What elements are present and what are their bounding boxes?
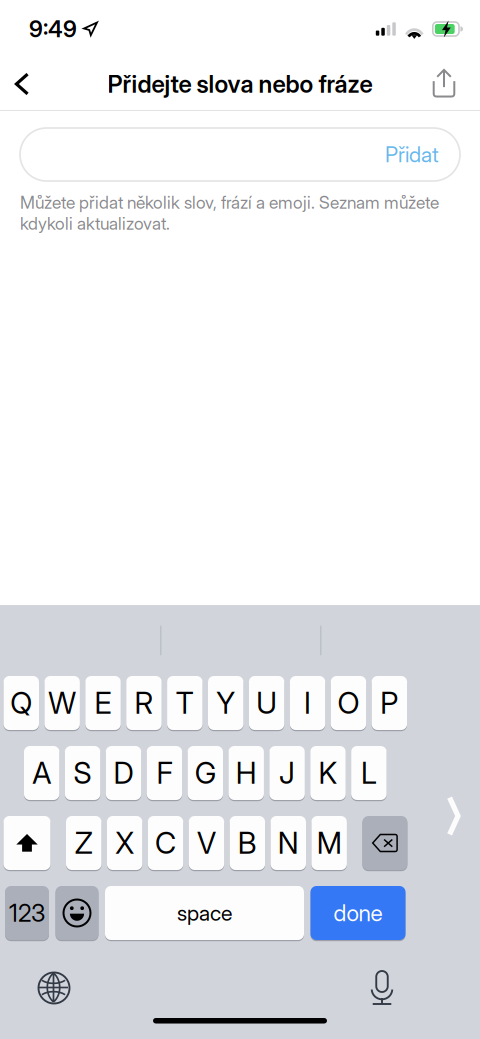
button[interactable]: L <box>351 746 387 800</box>
button[interactable]: E <box>85 676 121 730</box>
staticText: K <box>318 755 337 791</box>
button[interactable]: Y <box>208 676 243 730</box>
button[interactable]: W <box>44 676 80 730</box>
button[interactable]: V <box>189 816 224 870</box>
staticText: Přidat <box>385 142 439 167</box>
button[interactable]: O <box>331 676 366 730</box>
staticText: Přidejte slova nebo fráze <box>107 69 372 98</box>
button[interactable]: K <box>310 746 346 800</box>
staticText: Y <box>216 685 235 721</box>
button[interactable]: space <box>105 886 304 940</box>
button[interactable]: X <box>107 816 142 870</box>
button[interactable]: Z <box>66 816 101 870</box>
staticText: P <box>380 685 398 721</box>
staticText: I <box>304 685 311 721</box>
button[interactable]: 123 <box>5 886 49 940</box>
button[interactable]: Shift <box>3 816 50 870</box>
staticText: Můžete přidat několik slov, frází a emoj… <box>20 192 439 234</box>
staticText: U <box>256 685 277 721</box>
staticText: L <box>361 755 377 791</box>
button[interactable]: Dictation <box>355 968 409 1008</box>
button[interactable]: J <box>269 746 305 800</box>
button[interactable]: A <box>24 746 59 800</box>
staticText: M <box>317 825 342 861</box>
staticText: done <box>333 899 382 927</box>
staticText: C <box>155 825 176 861</box>
button[interactable]: M <box>311 816 347 870</box>
staticText: F <box>156 755 172 791</box>
staticText: D <box>113 755 133 791</box>
staticText: S <box>74 755 92 791</box>
button[interactable]: D <box>106 746 141 800</box>
button[interactable]: done <box>310 886 405 940</box>
staticText: G <box>195 755 216 791</box>
button[interactable]: Delete <box>362 816 407 870</box>
button[interactable]: S <box>65 746 100 800</box>
button[interactable]: U <box>249 676 284 730</box>
staticText: Q <box>10 685 32 721</box>
staticText: B <box>238 825 257 861</box>
button[interactable]: P <box>372 676 407 730</box>
staticText: X <box>115 825 134 861</box>
staticText: 9:49 <box>29 15 77 43</box>
staticText: R <box>134 685 153 721</box>
button[interactable]: R <box>126 676 162 730</box>
button[interactable]: B <box>230 816 265 870</box>
button[interactable]: Přidat <box>20 128 460 181</box>
staticText: J <box>279 755 295 791</box>
button[interactable]: T <box>167 676 203 730</box>
button[interactable]: G <box>187 746 223 800</box>
button[interactable]: F <box>147 746 182 800</box>
button[interactable]: Next keyboard <box>27 968 81 1008</box>
staticText: H <box>236 755 257 791</box>
staticText: 123 <box>9 898 45 927</box>
staticText: A <box>32 755 51 791</box>
staticText: Z <box>75 825 93 861</box>
staticText: N <box>278 825 299 861</box>
staticText: space <box>177 900 232 926</box>
staticText: W <box>48 685 76 721</box>
button[interactable]: C <box>148 816 183 870</box>
button[interactable]: Emoji <box>55 886 98 940</box>
button[interactable]: H <box>228 746 264 800</box>
button[interactable]: Share <box>420 58 468 110</box>
staticText: V <box>197 825 216 861</box>
staticText: E <box>95 685 112 721</box>
button[interactable]: N <box>270 816 306 870</box>
staticText: O <box>337 685 359 721</box>
staticText: T <box>176 685 194 721</box>
button[interactable]: I <box>290 676 325 730</box>
button[interactable]: Back <box>4 58 40 110</box>
button[interactable]: Q <box>3 676 39 730</box>
